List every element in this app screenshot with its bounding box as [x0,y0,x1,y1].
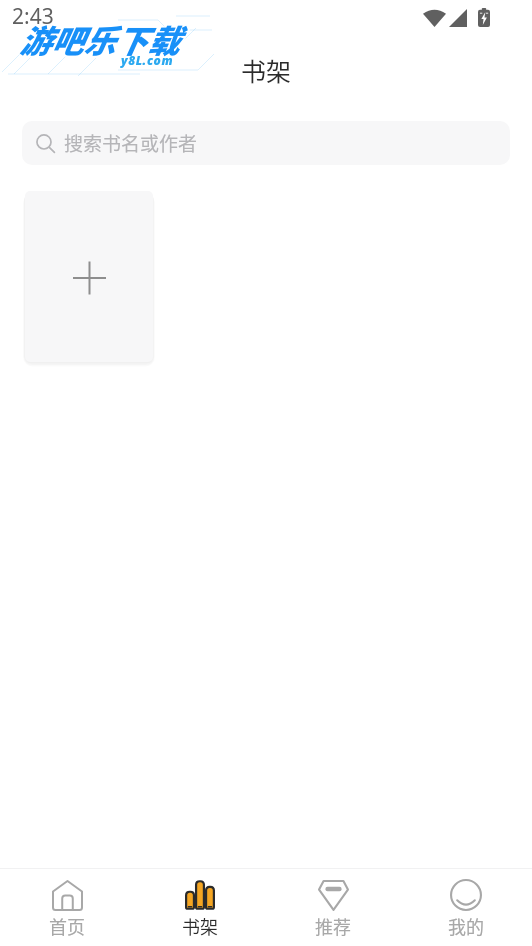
staticText: 游吧乐下载 [19,16,180,62]
button[interactable]: 推荐 [266,869,399,946]
button[interactable]: 添加书籍 [25,191,153,362]
staticText: 游吧乐下载 [21,16,182,62]
staticText: 游吧乐下载 [18,16,179,62]
staticText: 游吧乐下载 [19,18,180,64]
staticText: y8L.com [121,52,174,68]
button[interactable]: 首页 [0,869,133,946]
staticText: 2:43 [12,2,54,31]
staticText: 搜索书名或作者 [64,129,198,157]
staticText: 推荐 [315,913,351,939]
staticText: 首页 [49,913,85,939]
button[interactable]: 书架 [133,869,266,946]
staticText: 游吧乐下载 [19,15,180,61]
staticText: 书架 [182,913,218,939]
staticText: 书架 [241,52,292,88]
staticText: 我的 [448,913,484,939]
button[interactable]: 我的 [399,869,532,946]
button[interactable]: 搜索书名或作者 [22,121,510,165]
